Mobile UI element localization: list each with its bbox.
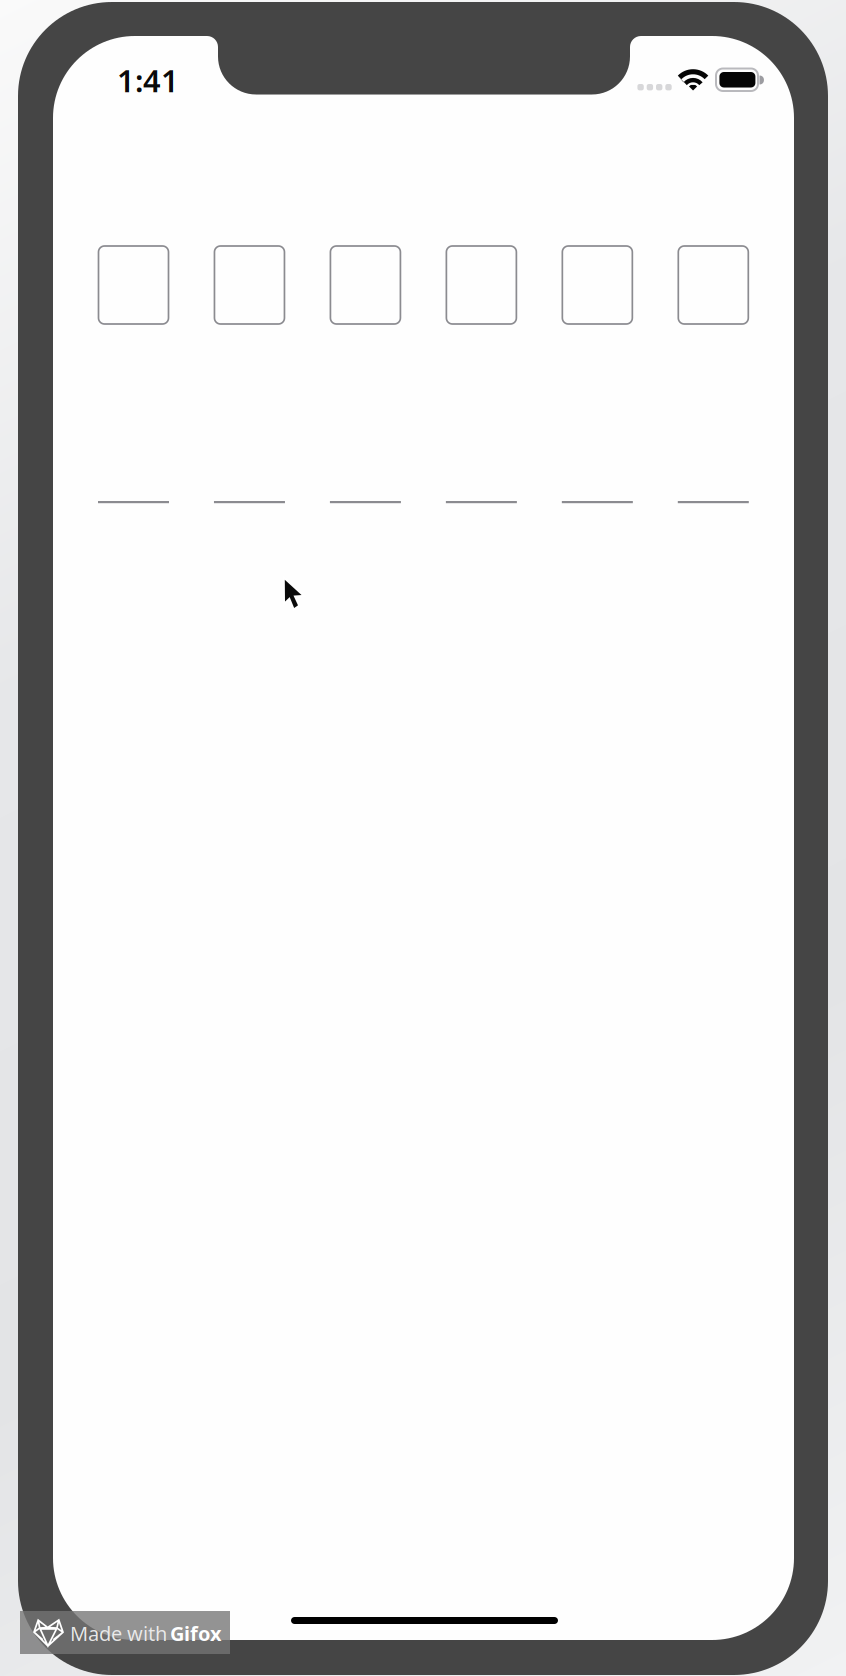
- button[interactable]: Slot 4: [446, 246, 516, 324]
- staticText: 1:41: [117, 60, 179, 101]
- staticText: Gifox: [170, 1620, 222, 1647]
- button[interactable]: Slot 6: [678, 246, 748, 324]
- staticText: Made with: [70, 1620, 172, 1647]
- button[interactable]: Slot 3: [330, 246, 400, 324]
- button[interactable]: Slot 1: [98, 246, 168, 324]
- button[interactable]: Slot 5: [562, 246, 632, 324]
- button[interactable]: Slot 2: [214, 246, 284, 324]
